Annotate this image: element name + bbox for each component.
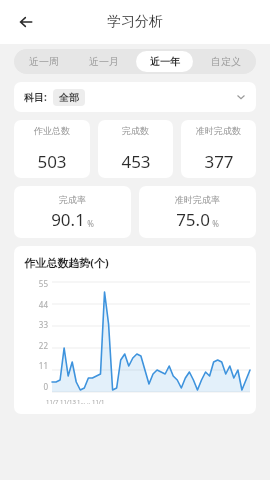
staticText: 11/13: [60, 398, 76, 406]
staticText: 近一月: [89, 55, 119, 68]
staticText: 1...: [77, 398, 86, 406]
staticText: ..: [87, 398, 91, 406]
button[interactable]: 自定义: [197, 51, 254, 72]
staticText: 近一年: [150, 55, 180, 68]
staticText: 准时完成率: [175, 194, 220, 205]
button[interactable]: 准时完成率: [139, 186, 256, 238]
button[interactable]: 完成数: [98, 120, 173, 178]
staticText: 11/7: [46, 398, 59, 406]
button[interactable]: 作业总数: [14, 120, 90, 178]
staticText: 自定义: [211, 55, 241, 68]
staticText: %: [87, 218, 94, 229]
staticText: 44: [38, 299, 48, 310]
staticText: 作业总数: [34, 125, 70, 136]
staticText: 377: [204, 150, 234, 173]
button[interactable]: 科目:: [14, 82, 256, 112]
staticText: 全部: [59, 91, 79, 104]
staticText: 503: [37, 150, 67, 173]
staticText: 55: [38, 278, 48, 289]
staticText: 75.0: [176, 208, 210, 231]
staticText: 11/1: [92, 398, 105, 406]
staticText: %: [212, 218, 219, 229]
button[interactable]: 近一月: [76, 51, 132, 72]
staticText: 科目:: [24, 90, 47, 104]
staticText: 近一周: [29, 55, 59, 68]
staticText: 90.1: [51, 208, 85, 231]
staticText: 0: [43, 381, 48, 392]
button[interactable]: 近一周: [16, 51, 72, 72]
button[interactable]: 准时完成数: [181, 120, 256, 178]
button[interactable]: 完成率: [14, 186, 131, 238]
button[interactable]: 近一年: [136, 51, 193, 72]
staticText: 33: [38, 319, 48, 330]
staticText: 22: [38, 340, 48, 351]
staticText: 学习分析: [107, 13, 163, 31]
button[interactable]: Back: [10, 6, 42, 38]
staticText: 11: [38, 360, 48, 371]
staticText: 作业总数趋势(个): [24, 255, 109, 270]
staticText: 准时完成数: [196, 125, 241, 136]
staticText: 完成数: [122, 125, 149, 136]
staticText: 完成率: [59, 194, 86, 205]
staticText: 453: [121, 150, 151, 173]
